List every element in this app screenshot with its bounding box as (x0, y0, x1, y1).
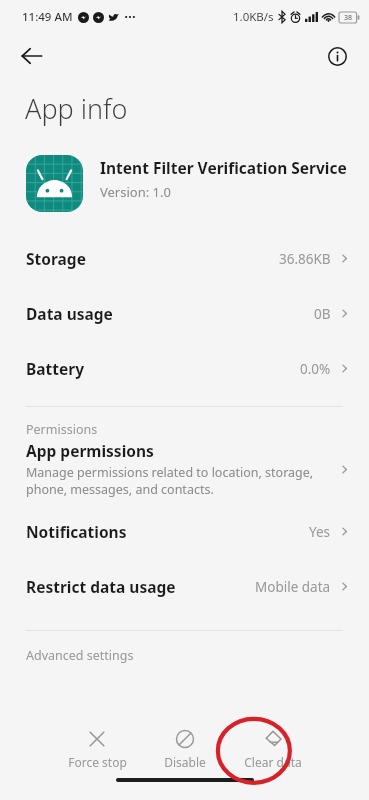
staticText: 38 (344, 13, 353, 23)
staticText: 36.86KB (279, 250, 331, 268)
staticText: Mobile data (255, 578, 331, 596)
staticText: 1.0KB/s (233, 9, 274, 25)
staticText: 11:49 AM (22, 9, 73, 25)
button[interactable]: Battery (0, 341, 369, 396)
staticText: Storage (26, 248, 86, 269)
staticText: 0B (314, 305, 331, 323)
button[interactable]: App details info (317, 36, 357, 76)
button[interactable]: Force stop (53, 725, 141, 774)
staticText: App permissions (26, 440, 154, 461)
staticText: Intent Filter Verification Service (100, 157, 347, 178)
button[interactable]: Storage (0, 231, 369, 286)
staticText: Restrict data usage (26, 576, 176, 597)
staticText: Disable (164, 754, 206, 770)
button[interactable]: Clear data (229, 725, 317, 774)
button[interactable]: App permissions (0, 438, 369, 504)
button[interactable]: Back (10, 34, 54, 78)
staticText: Advanced settings (26, 647, 134, 664)
staticText: App info (25, 90, 128, 127)
staticText: Force stop (68, 754, 127, 770)
staticText: Data usage (26, 303, 113, 324)
staticText: Manage permissions related to location, … (26, 464, 330, 498)
staticText: Battery (26, 358, 85, 379)
staticText: 0.0% (300, 360, 331, 378)
staticText: Clear data (244, 754, 302, 770)
button[interactable]: Notifications (0, 504, 369, 559)
staticText: Permissions (26, 421, 98, 438)
staticText: Version: 1.0 (100, 183, 171, 201)
staticText: Notifications (26, 521, 127, 542)
staticText: Yes (309, 523, 331, 541)
button[interactable]: Data usage (0, 286, 369, 341)
button[interactable]: Disable (141, 725, 229, 774)
button[interactable]: Restrict data usage (0, 559, 369, 614)
